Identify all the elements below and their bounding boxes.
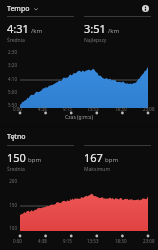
staticText: Średnia — [7, 166, 25, 173]
staticText: 150 — [7, 150, 26, 165]
staticText: 4:31 — [7, 21, 29, 36]
staticText: 150 — [0, 202, 17, 208]
staticText: 0:00 — [13, 106, 22, 112]
staticText: 2:30 — [0, 49, 17, 55]
staticText: 3:20 — [0, 62, 17, 68]
staticText: Średnia — [7, 37, 25, 44]
staticText: 0:00 — [13, 238, 22, 244]
button[interactable]: Tempo — [7, 4, 39, 14]
staticText: 9:15 — [63, 106, 72, 112]
staticText: Najlepszy — [84, 37, 107, 44]
staticText: /km — [108, 27, 120, 35]
staticText: Tempo — [7, 4, 30, 14]
staticText: 4:38 — [38, 238, 47, 244]
staticText: 23:08 — [143, 238, 155, 244]
staticText: Tętno — [7, 132, 26, 142]
staticText: 200 — [0, 178, 17, 184]
button[interactable]: 150 — [7, 145, 74, 173]
staticText: bpm — [28, 156, 41, 164]
staticText: 4:38 — [38, 106, 47, 112]
staticText: 13:53 — [87, 106, 99, 112]
staticText: 9:15 — [63, 238, 72, 244]
staticText: Czas (g:m:s) — [0, 114, 158, 121]
button[interactable]: Informacje — [140, 3, 151, 14]
button[interactable]: 167 — [84, 145, 151, 173]
staticText: 18:30 — [115, 238, 127, 244]
staticText: 5:50 — [0, 102, 17, 108]
staticText: 100 — [0, 225, 17, 231]
staticText: 23:08 — [143, 106, 155, 112]
staticText: 5:00 — [0, 89, 17, 95]
button[interactable]: 4:31 — [7, 16, 74, 44]
staticText: Maksimum — [84, 166, 111, 173]
button[interactable]: 3:51 — [84, 16, 151, 44]
button[interactable]: Tętno — [7, 132, 151, 142]
staticText: 13:53 — [87, 238, 99, 244]
staticText: /km — [31, 27, 43, 35]
staticText: 167 — [84, 150, 103, 165]
staticText: 4:10 — [0, 76, 17, 82]
staticText: bpm — [105, 156, 118, 164]
staticText: 18:30 — [115, 106, 127, 112]
staticText: 3:51 — [84, 21, 106, 36]
